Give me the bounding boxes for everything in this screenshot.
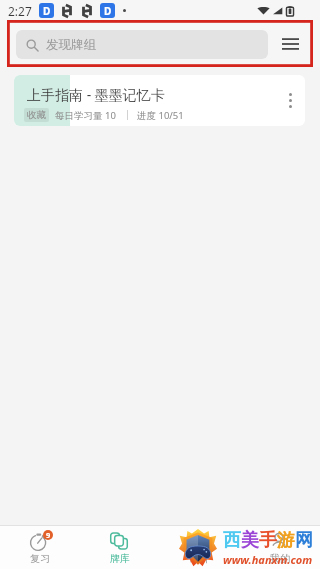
button[interactable]: More options bbox=[275, 75, 305, 126]
button[interactable]: 牌库 bbox=[80, 526, 160, 569]
staticText: www.hanxm.com bbox=[223, 552, 313, 567]
staticText: 每日学习量 10 bbox=[55, 109, 116, 122]
staticText: 上手指南 - 墨墨记忆卡 bbox=[27, 85, 165, 104]
button[interactable]: 我的 bbox=[240, 526, 320, 569]
button[interactable]: Menu bbox=[268, 21, 312, 67]
staticText: 手 bbox=[259, 529, 277, 552]
staticText: 2:27 bbox=[8, 3, 32, 19]
staticText: 游 bbox=[277, 529, 295, 552]
button[interactable]: 统计 bbox=[160, 526, 240, 569]
staticText: 牌库 bbox=[110, 552, 130, 565]
staticText: 收藏 bbox=[27, 109, 46, 121]
staticText: 西 bbox=[223, 529, 241, 552]
button[interactable]: 9 bbox=[0, 526, 80, 569]
staticText: 9 bbox=[46, 530, 51, 540]
staticText: 统计 bbox=[190, 552, 210, 565]
staticText: 我的 bbox=[270, 552, 290, 565]
staticText: D bbox=[43, 4, 51, 18]
staticText: D bbox=[104, 4, 112, 18]
staticText: 复习 bbox=[30, 552, 50, 565]
staticText: 发现牌组 bbox=[46, 37, 96, 53]
staticText: 网 bbox=[295, 529, 313, 552]
staticText: 进度 10/51 bbox=[137, 109, 184, 122]
button[interactable]: 发现牌组 bbox=[16, 30, 268, 59]
button[interactable]: 上手指南 - 墨墨记忆卡 bbox=[14, 75, 305, 126]
staticText: 美 bbox=[241, 529, 259, 552]
